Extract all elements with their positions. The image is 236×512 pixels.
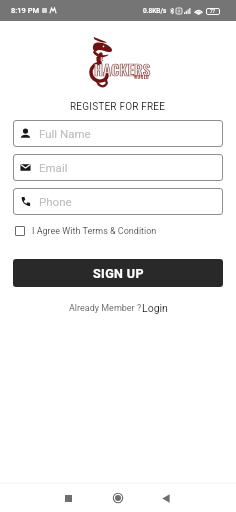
staticText: REGISTER FOR FREE (70, 101, 166, 113)
button[interactable]: Recent apps (56, 486, 80, 510)
staticText: WORLD (134, 74, 150, 81)
staticText: 77 (210, 9, 216, 14)
button[interactable]: Full Name (13, 120, 223, 147)
staticText: SIGN UP (93, 266, 144, 281)
button[interactable]: Login (142, 302, 168, 314)
staticText: HACKERS (94, 58, 151, 80)
staticText: Full Name (39, 127, 91, 140)
button[interactable]: Email (13, 154, 223, 181)
staticText: Already Member ? (69, 303, 142, 314)
staticText: 0.8KB/s (143, 7, 167, 15)
button[interactable]: Home (106, 486, 130, 510)
staticText: THE (96, 55, 104, 62)
staticText: I Agree With Terms & Condition (32, 226, 157, 237)
staticText: Phone (39, 195, 72, 208)
button[interactable]: I Agree With Terms & Condition (15, 224, 157, 238)
staticText: 8:19 PM (11, 6, 39, 15)
button[interactable]: Phone (13, 188, 223, 215)
button[interactable]: SIGN UP (13, 259, 223, 287)
button[interactable]: Back (154, 486, 178, 510)
staticText: HACKERS (94, 58, 151, 80)
staticText: Email (39, 161, 68, 174)
